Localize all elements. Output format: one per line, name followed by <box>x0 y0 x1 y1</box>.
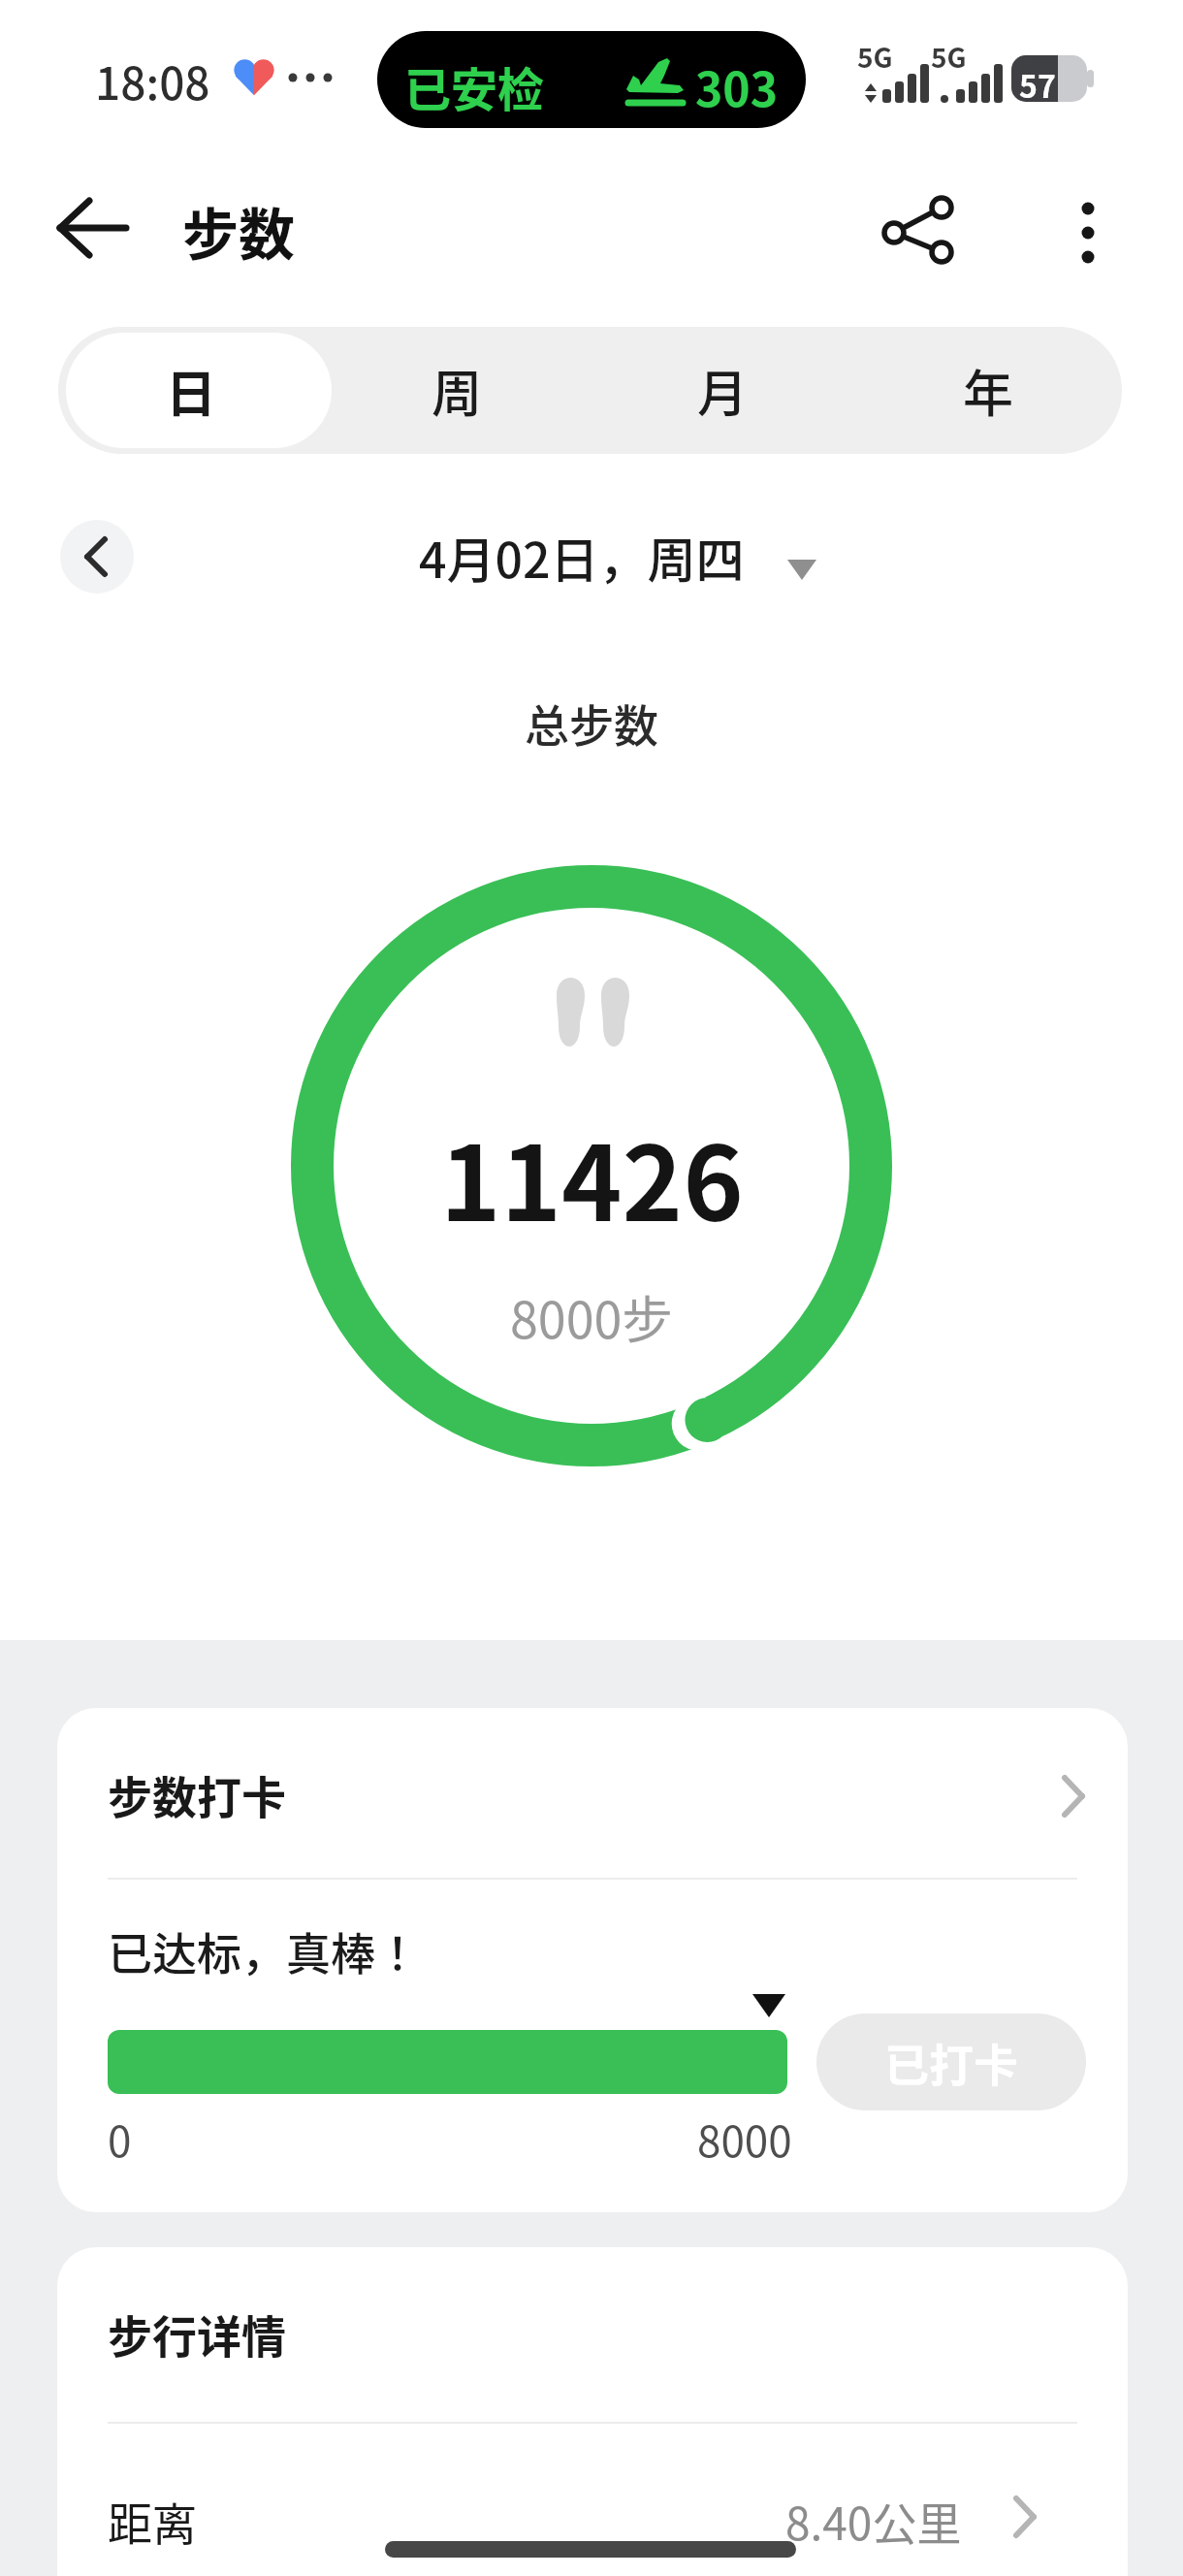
button[interactable]: 日 <box>58 327 324 454</box>
staticText: 年 <box>963 354 1014 427</box>
button[interactable] <box>866 175 973 281</box>
staticText: 已达标，真棒！ <box>108 1918 420 1983</box>
staticText: 总步数 <box>525 691 658 756</box>
staticText: 步行详情 <box>108 2302 286 2367</box>
staticText: 8000 <box>697 2108 792 2170</box>
button[interactable] <box>1043 175 1133 281</box>
staticText: 已安检 <box>404 52 545 120</box>
button[interactable] <box>60 520 134 594</box>
staticText: 0 <box>108 2108 132 2170</box>
button[interactable]: 步数打卡 <box>57 1708 1128 1878</box>
button[interactable]: 年 <box>855 327 1121 454</box>
button[interactable]: 周 <box>324 327 590 454</box>
staticText: 18:08 <box>95 48 210 113</box>
button[interactable]: 月 <box>590 327 855 454</box>
staticText: 4月02日，周四 <box>419 522 745 592</box>
staticText: 距离 <box>108 2489 197 2554</box>
staticText: 已打卡 <box>884 2030 1018 2095</box>
button[interactable]: 距离 <box>57 2446 1128 2572</box>
staticText: 月 <box>697 354 749 427</box>
button[interactable]: 已安检 <box>377 31 806 128</box>
staticText: 8.40公里 <box>785 2489 962 2554</box>
staticText: 周 <box>432 354 483 427</box>
staticText: 步数打卡 <box>108 1762 286 1827</box>
staticText: 11426 <box>440 1102 744 1250</box>
staticText: 5G <box>931 37 967 77</box>
button[interactable] <box>47 184 140 272</box>
staticText: 8000步 <box>510 1280 673 1353</box>
staticText: 57 <box>1019 62 1056 107</box>
staticText: 303 <box>695 52 778 120</box>
button[interactable]: 已打卡 <box>816 2013 1086 2110</box>
button[interactable]: 4月02日，周四 <box>368 520 834 594</box>
staticText: 5G <box>857 37 893 77</box>
staticText: 日 <box>166 354 217 427</box>
staticText: 步数 <box>182 190 296 272</box>
button[interactable] <box>66 333 332 448</box>
